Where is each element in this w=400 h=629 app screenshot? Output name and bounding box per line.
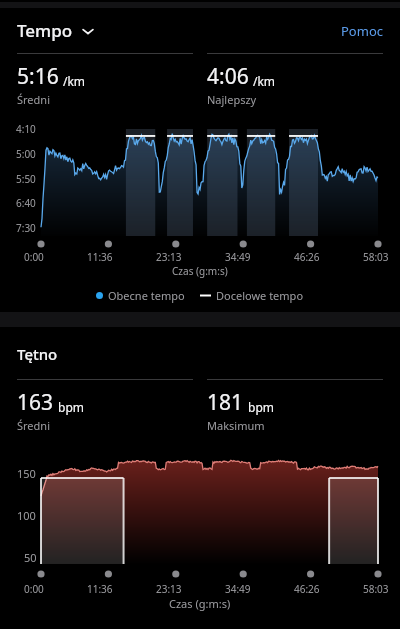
staticText: 34:49 <box>225 582 251 596</box>
staticText: Czas (g:m:s) <box>172 264 228 278</box>
staticText: 4:06 <box>207 62 249 91</box>
staticText: 5:50 <box>16 172 36 186</box>
staticText: bpm <box>248 399 274 415</box>
staticText: 5:16 <box>17 62 59 91</box>
staticText: Obecne tempo <box>108 288 185 303</box>
staticText: Tętno <box>17 344 58 364</box>
staticText: 5:00 <box>16 147 36 161</box>
staticText: 0:00 <box>24 582 44 596</box>
button[interactable]: 163 <box>17 379 193 433</box>
staticText: Maksimum <box>207 418 265 433</box>
staticText: 11:36 <box>87 582 113 596</box>
button[interactable]: Tempo <box>17 19 95 42</box>
staticText: Tempo <box>17 19 73 42</box>
staticText: 58:03 <box>363 582 389 596</box>
staticText: 23:13 <box>156 582 182 596</box>
button[interactable]: 5:16 <box>17 53 193 107</box>
staticText: 7:30 <box>16 221 36 235</box>
staticText: Średni <box>17 418 50 433</box>
staticText: Średni <box>17 92 50 107</box>
staticText: 46:26 <box>294 250 320 264</box>
other: Rozwiń <box>81 24 95 38</box>
staticText: Docelowe tempo <box>216 288 304 303</box>
staticText: Pomoc <box>341 22 383 40</box>
button[interactable]: Obecne tempo <box>96 288 185 303</box>
staticText: 23:13 <box>156 250 182 264</box>
staticText: bpm <box>58 399 84 415</box>
button[interactable]: 181 <box>207 379 383 433</box>
staticText: 0:00 <box>24 250 44 264</box>
staticText: 6:40 <box>16 196 36 210</box>
staticText: 46:26 <box>294 582 320 596</box>
staticText: Czas (g:m:s) <box>169 596 231 611</box>
staticText: 181 <box>207 388 244 417</box>
staticText: 11:36 <box>87 250 113 264</box>
staticText: 50 <box>24 550 37 565</box>
staticText: /km <box>63 73 86 89</box>
button[interactable]: Pomoc <box>341 22 383 40</box>
staticText: 4:10 <box>16 122 36 136</box>
staticText: 100 <box>17 508 36 523</box>
staticText: 163 <box>17 388 54 417</box>
staticText: 58:03 <box>363 250 389 264</box>
staticText: /km <box>253 73 276 89</box>
staticText: 34:49 <box>225 250 251 264</box>
button[interactable]: Docelowe tempo <box>200 288 304 303</box>
button[interactable]: 4:06 <box>207 53 383 107</box>
staticText: Najlepszy <box>207 92 257 107</box>
staticText: 150 <box>17 466 36 481</box>
